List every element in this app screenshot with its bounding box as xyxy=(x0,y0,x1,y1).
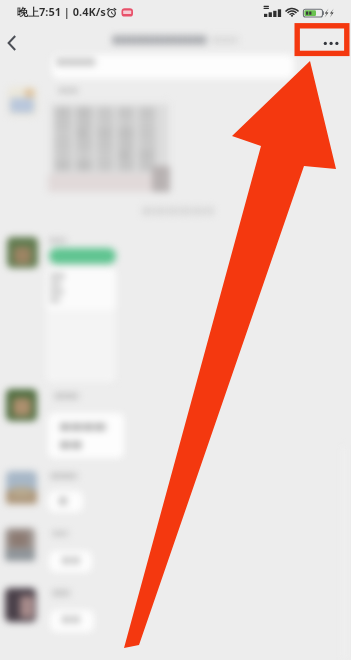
staticText: 晚上7:51 | 0.4K/s xyxy=(17,4,106,19)
button[interactable]: More options xyxy=(311,28,351,59)
button[interactable]: Back xyxy=(1,27,31,57)
